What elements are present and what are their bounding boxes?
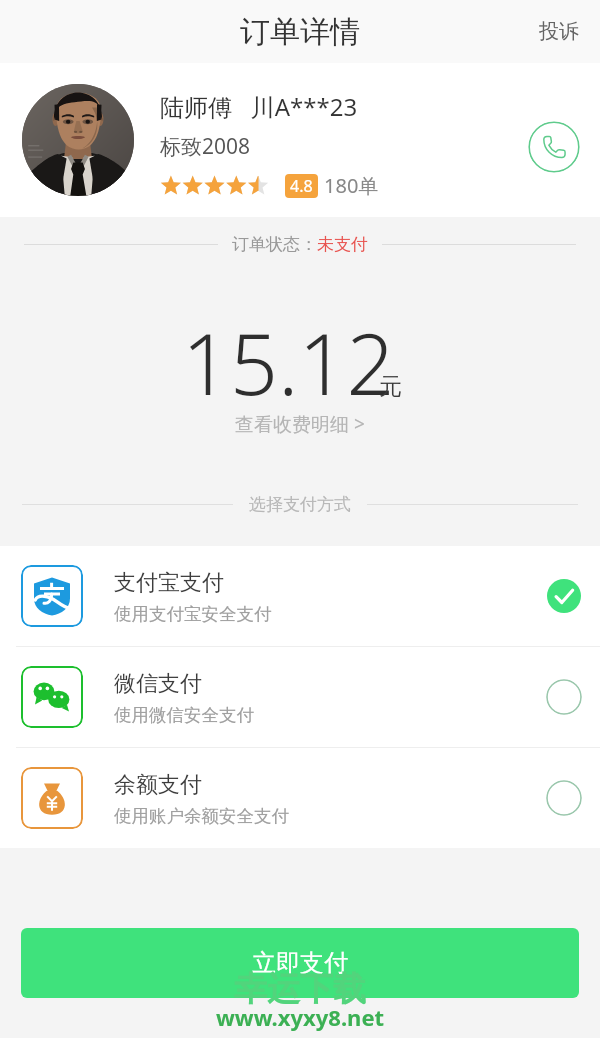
staticText: 元 bbox=[379, 372, 402, 401]
staticText: 微信支付 bbox=[114, 670, 202, 698]
button[interactable]: Call driver bbox=[528, 121, 580, 173]
staticText: 180单 bbox=[324, 172, 379, 199]
staticText: 选择支付方式 bbox=[249, 494, 351, 515]
staticText: 订单详情 bbox=[240, 13, 360, 51]
staticText: 幸运下载 bbox=[234, 968, 366, 1010]
staticText: 15.12 bbox=[182, 305, 395, 419]
button[interactable]: Select bbox=[546, 679, 582, 715]
staticText: 4.8 bbox=[290, 175, 313, 197]
staticText: 陆师傅 川A***23 bbox=[160, 90, 358, 123]
button[interactable]: 查看收费明细 > bbox=[225, 407, 375, 441]
staticText: 订单状态： bbox=[232, 234, 317, 255]
staticText: 支付宝支付 bbox=[114, 569, 224, 597]
button[interactable]: 微信支付 bbox=[0, 647, 600, 747]
staticText: 立即支付 bbox=[252, 948, 348, 978]
button[interactable]: 立即支付 bbox=[21, 928, 579, 998]
staticText: 使用账户余额安全支付 bbox=[114, 805, 289, 827]
staticText: 余额支付 bbox=[114, 771, 202, 799]
button[interactable]: 投诉 bbox=[519, 5, 600, 58]
staticText: www.xyxy8.net bbox=[216, 1002, 385, 1032]
staticText: 使用微信安全支付 bbox=[114, 704, 254, 726]
button[interactable]: Selected bbox=[546, 578, 582, 614]
button[interactable]: 余额支付 bbox=[0, 748, 600, 848]
staticText: 查看收费明细 > bbox=[235, 411, 365, 437]
staticText: 标致2008 bbox=[160, 132, 251, 161]
button[interactable]: Select bbox=[546, 780, 582, 816]
staticText: 投诉 bbox=[539, 19, 579, 44]
button[interactable]: 支付宝支付 bbox=[0, 546, 600, 646]
staticText: 使用支付宝安全支付 bbox=[114, 603, 272, 625]
staticText: 未支付 bbox=[317, 234, 368, 255]
